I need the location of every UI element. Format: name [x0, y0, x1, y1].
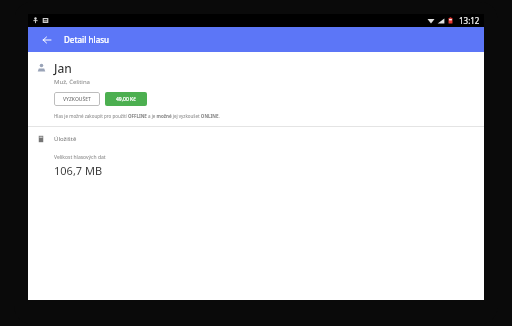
staticText: 13:12 [459, 15, 480, 26]
staticText: VYZKOUŠET [63, 96, 91, 103]
staticText: 49,00 Kč [116, 96, 136, 103]
button[interactable]: 49,00 Kč [105, 92, 147, 106]
button[interactable]: Back [38, 31, 56, 49]
staticText: Hlas je možné zakoupit pro použití OFFLI… [54, 113, 220, 119]
staticText: Úložiště [54, 135, 77, 143]
staticText: Detail hlasu [64, 34, 110, 45]
staticText: Jan [54, 60, 72, 76]
staticText: 106,7 MB [54, 163, 103, 178]
staticText: Muž, Čeština [54, 78, 90, 86]
staticText: Velikost hlasových dat [54, 154, 106, 161]
button[interactable]: VYZKOUŠET [54, 92, 100, 106]
